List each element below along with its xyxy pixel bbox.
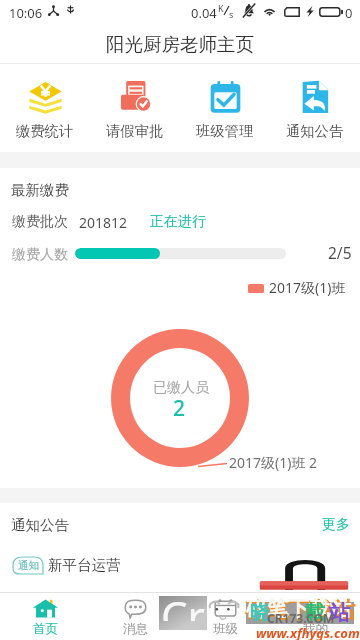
button[interactable]: 缴费统计 (0, 65, 90, 152)
staticText: 站 (329, 600, 350, 626)
staticText: 碎笔下载站 (246, 596, 351, 622)
staticText: 通知 (18, 559, 39, 572)
staticText: 2017级(1)班 2 (229, 453, 318, 472)
button[interactable]: 首页 (0, 592, 90, 640)
staticText: 新平台运营 (48, 556, 121, 574)
staticText: 201812 (79, 213, 128, 232)
button[interactable]: 消息 (90, 592, 180, 640)
staticText: 消息 (123, 621, 148, 637)
staticText: s (229, 8, 234, 20)
staticText: 2/5 (328, 242, 352, 263)
staticText: 阳光厨房老师主页 (106, 33, 254, 56)
staticText: K (218, 2, 224, 14)
staticText: 更多 (322, 516, 350, 534)
button[interactable]: 班级 (180, 592, 270, 640)
staticText: 缴费人数 (12, 246, 68, 264)
button[interactable]: 更多 (315, 510, 357, 540)
button[interactable]: 班级管理 (180, 65, 270, 152)
staticText: 0.04 (191, 4, 217, 22)
staticText: 2 (173, 394, 186, 423)
staticText: CR173.COM (267, 610, 335, 626)
staticText: 缴费批次 (12, 213, 68, 231)
staticText: 已缴人员 (153, 379, 209, 397)
staticText: 通知公告 (286, 122, 344, 140)
staticText: 0 (345, 4, 353, 22)
button[interactable]: 通知 (0, 550, 360, 580)
staticText: 班级 (213, 621, 238, 637)
staticText: 首页 (33, 621, 58, 637)
button[interactable]: 我的 (270, 592, 360, 640)
staticText: 班级管理 (196, 122, 254, 140)
button[interactable]: 通知公告 (270, 65, 360, 152)
staticText: 10:06 (9, 4, 43, 22)
staticText: 載 (305, 600, 325, 625)
staticText: 我的 (303, 621, 328, 637)
staticText: 缴费统计 (16, 122, 74, 140)
staticText: www.xfhygs.com (256, 624, 360, 640)
button[interactable]: 请假审批 (90, 65, 180, 152)
staticText: 通知公告 (11, 516, 69, 534)
staticText: 请假审批 (106, 122, 164, 140)
staticText: Cr (161, 587, 205, 621)
staticText: 最新缴费 (11, 181, 69, 199)
staticText: 晓 (250, 601, 269, 625)
staticText: 正在进行 (150, 213, 206, 231)
staticText: 2017级(1)班 (269, 278, 346, 297)
staticText: 碎笔下载站 (245, 597, 355, 625)
